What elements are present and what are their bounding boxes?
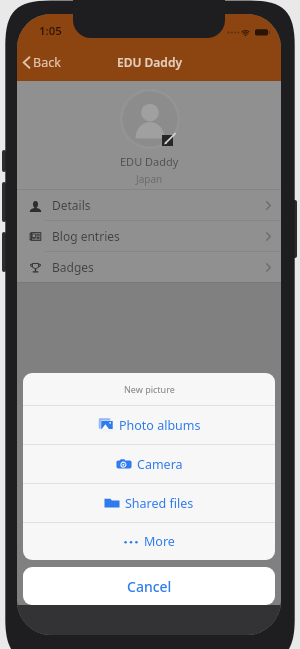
staticText: Shared files <box>125 495 194 512</box>
staticText: New picture <box>124 383 175 395</box>
staticText: 1:05 <box>39 23 62 39</box>
staticText: Cancel <box>127 577 172 596</box>
staticText: Camera <box>137 456 183 473</box>
staticText: Japan <box>136 172 163 186</box>
staticText: Photo albums <box>119 417 201 434</box>
staticText: More <box>144 533 175 550</box>
button[interactable]: Badges <box>17 252 281 282</box>
button[interactable]: Blog entries <box>17 221 281 251</box>
button[interactable]: Cancel <box>23 567 275 605</box>
button[interactable]: Shared files <box>23 484 275 522</box>
staticText: EDU Daddy <box>117 54 182 70</box>
staticText: Badges <box>52 259 94 275</box>
staticText: EDU Daddy <box>120 154 179 169</box>
button[interactable]: Edit profile picture <box>160 131 178 149</box>
button[interactable]: Back <box>19 50 65 75</box>
button[interactable]: Photo albums <box>23 406 275 444</box>
staticText: Back <box>33 54 61 71</box>
button[interactable]: More <box>23 523 275 560</box>
staticText: Blog entries <box>52 228 120 244</box>
staticText: Details <box>52 197 91 213</box>
button[interactable]: Details <box>17 190 281 220</box>
button[interactable]: Camera <box>23 445 275 483</box>
